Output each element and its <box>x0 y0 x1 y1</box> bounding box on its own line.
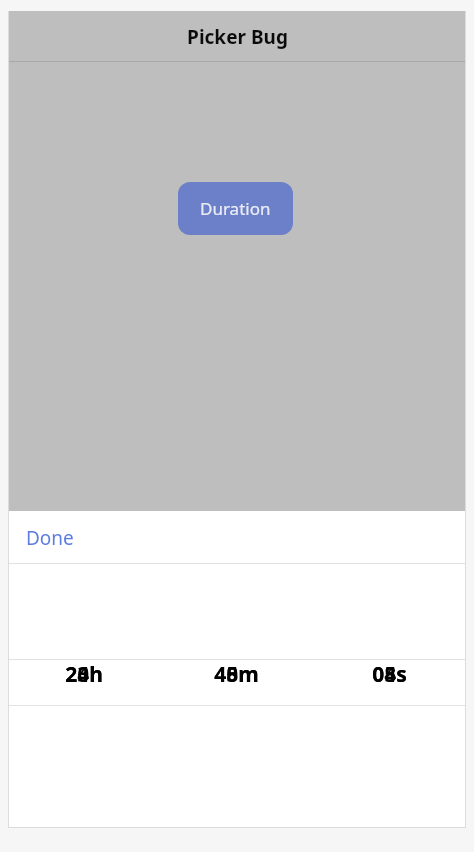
staticText: Picker Bug <box>187 24 288 50</box>
button[interactable]: 23h <box>8 660 160 689</box>
button[interactable]: Duration <box>178 182 293 235</box>
staticText: 48m <box>214 660 259 689</box>
button[interactable]: 45m <box>160 660 313 689</box>
staticText: 05s <box>372 660 407 689</box>
staticText: 20h <box>65 660 103 689</box>
staticText: Done <box>26 525 74 551</box>
staticText: 08s <box>372 660 407 689</box>
staticText: Duration <box>200 197 271 220</box>
staticText: 45m <box>214 660 259 689</box>
staticText: 24h <box>65 660 103 689</box>
button[interactable]: 04s <box>313 660 466 689</box>
staticText: 23h <box>65 660 103 689</box>
button[interactable]: Done <box>8 511 466 564</box>
staticText: 04s <box>372 660 407 689</box>
staticText: 40m <box>214 660 259 689</box>
